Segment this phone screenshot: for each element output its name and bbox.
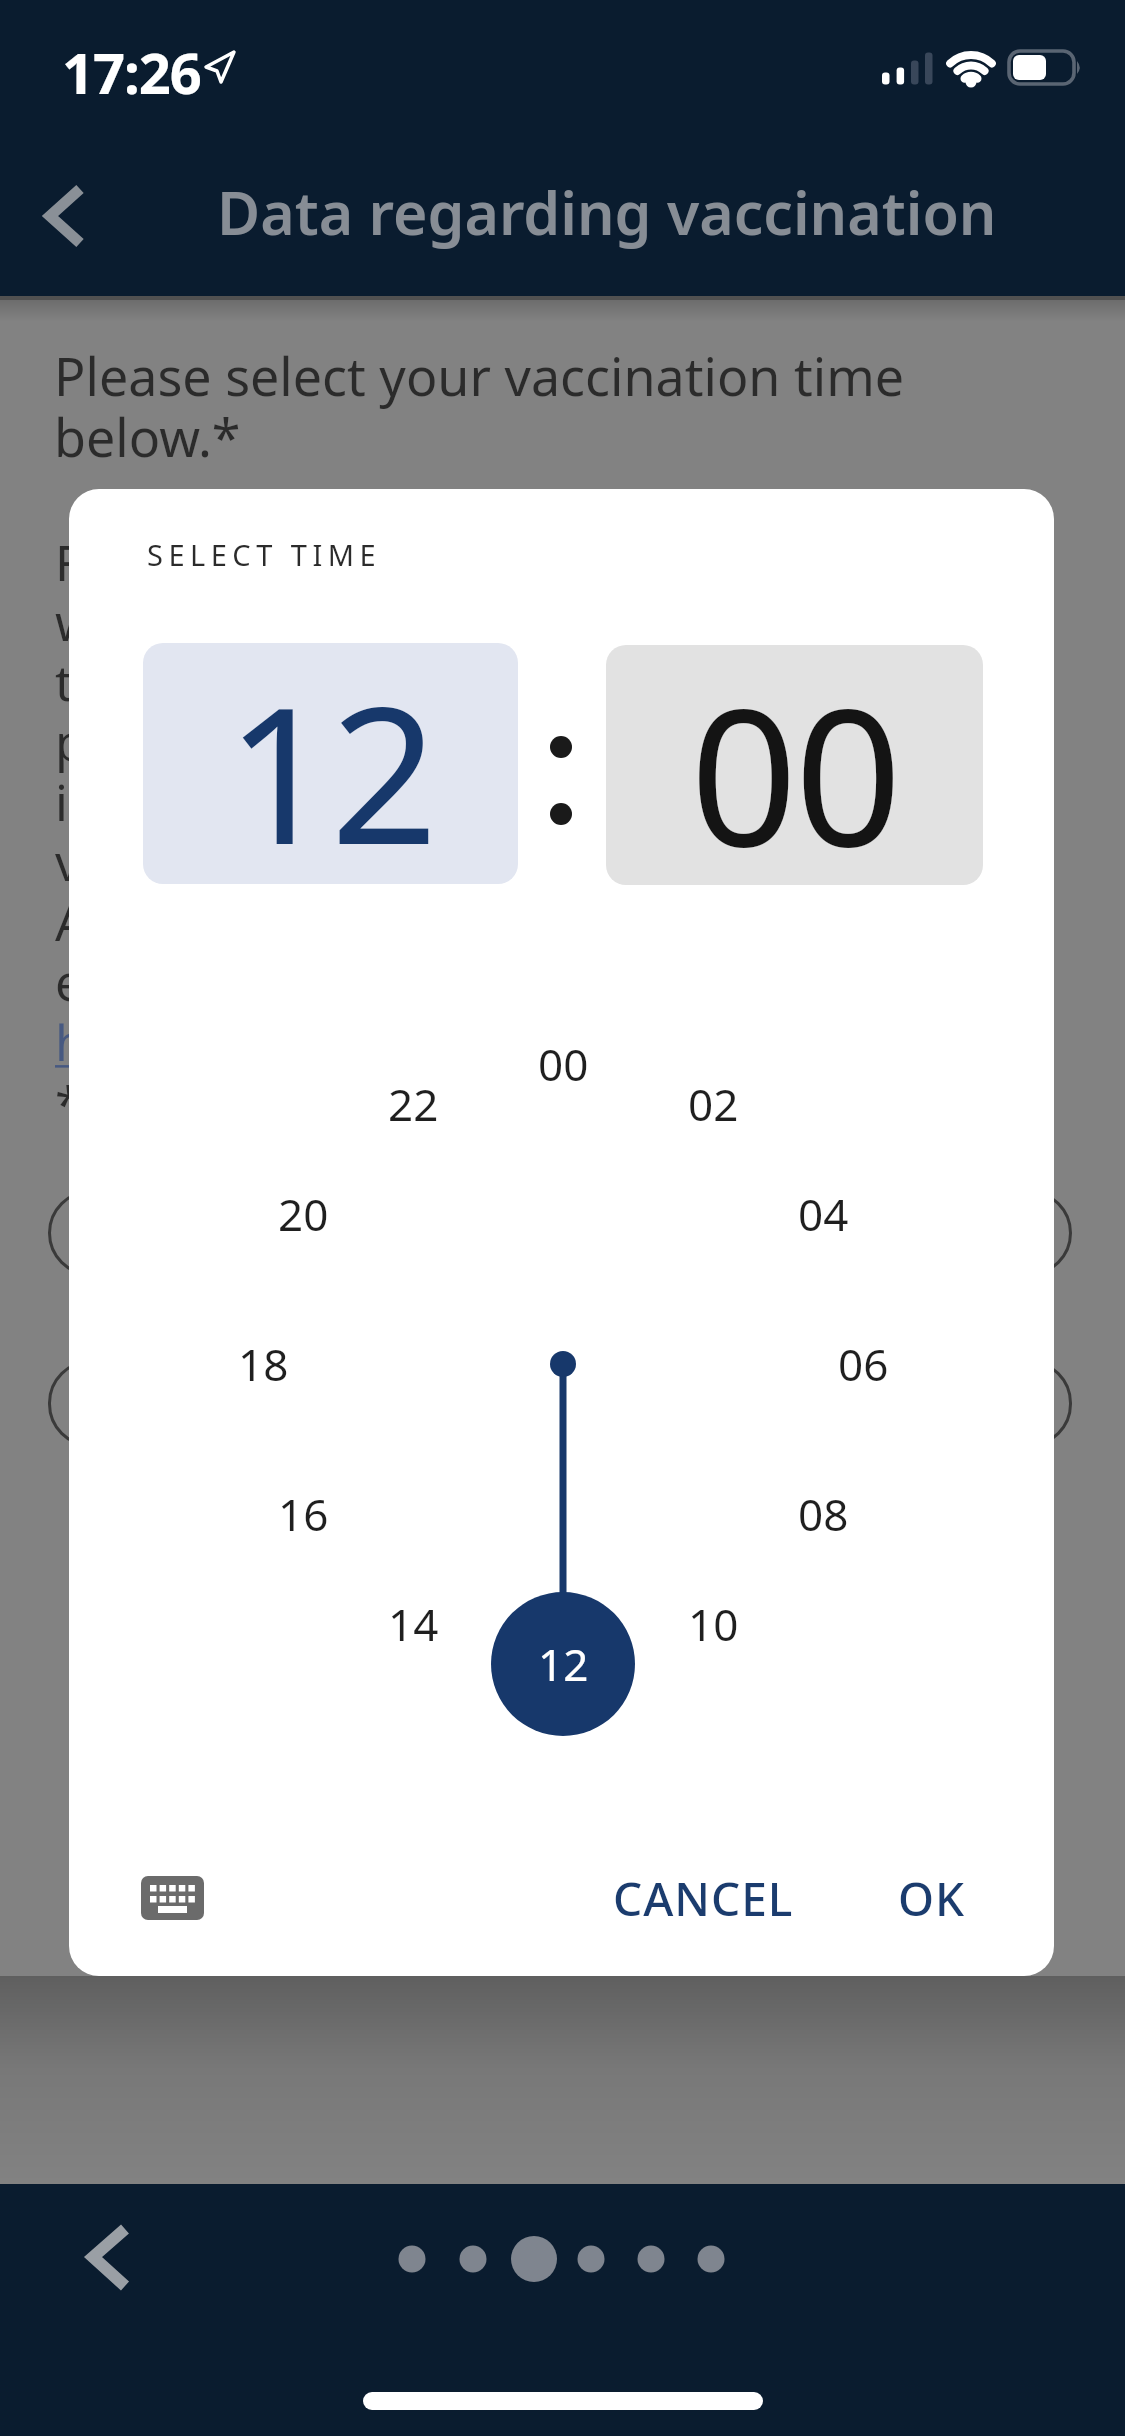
staticText: 08 — [798, 1484, 849, 1544]
staticText: F — [55, 528, 81, 596]
staticText: 00 — [690, 645, 900, 885]
staticText: 22 — [388, 1074, 439, 1134]
staticText: e — [55, 948, 84, 1016]
staticText: 00 — [538, 1034, 589, 1094]
staticText: Data regarding vaccination — [217, 172, 997, 252]
staticText: SELECT TIME — [147, 535, 382, 574]
staticText: Please select your vaccination time — [54, 340, 905, 411]
button[interactable]: 00 — [503, 1024, 623, 1104]
staticText: 16 — [278, 1484, 329, 1544]
staticText: 18 — [238, 1334, 289, 1394]
button[interactable]: 20 — [243, 1174, 363, 1254]
staticText: t — [55, 648, 74, 716]
button[interactable]: 06 — [803, 1324, 923, 1404]
staticText: OK — [898, 1867, 966, 1930]
staticText: 20 — [278, 1184, 329, 1244]
staticText: CANCEL — [613, 1867, 794, 1930]
staticText: below.* — [54, 401, 241, 472]
button[interactable] — [39, 180, 91, 252]
button[interactable]: 12 — [143, 643, 518, 884]
staticText: 06 — [838, 1334, 889, 1394]
staticText: 02 — [688, 1074, 739, 1134]
staticText: w — [55, 588, 95, 656]
staticText: 12 — [538, 1634, 589, 1694]
button[interactable]: 00 — [606, 645, 983, 885]
staticText: 17:26 — [62, 34, 201, 110]
button[interactable]: 18 — [203, 1324, 323, 1404]
staticText: 10 — [688, 1594, 739, 1654]
staticText: i — [55, 768, 68, 836]
staticText: p — [55, 708, 86, 776]
button[interactable]: 12 — [503, 1624, 623, 1704]
staticText: 04 — [798, 1184, 849, 1244]
staticText: 12 — [226, 643, 436, 884]
staticText: 14 — [388, 1594, 439, 1654]
button[interactable]: OK — [864, 1865, 999, 1931]
button[interactable]: CANCEL — [588, 1865, 818, 1931]
button[interactable] — [80, 2220, 136, 2296]
staticText: A — [55, 888, 87, 956]
button[interactable] — [141, 1876, 204, 1920]
button[interactable]: 14 — [353, 1584, 473, 1664]
button[interactable]: 04 — [763, 1174, 883, 1254]
staticText: v — [55, 828, 81, 896]
staticText: h — [55, 1008, 86, 1076]
button[interactable]: 16 — [243, 1474, 363, 1554]
button[interactable]: 08 — [763, 1474, 883, 1554]
button[interactable]: 02 — [653, 1064, 773, 1144]
staticText: * — [55, 1070, 83, 1138]
button[interactable]: 10 — [653, 1584, 773, 1664]
button[interactable]: 22 — [353, 1064, 473, 1144]
